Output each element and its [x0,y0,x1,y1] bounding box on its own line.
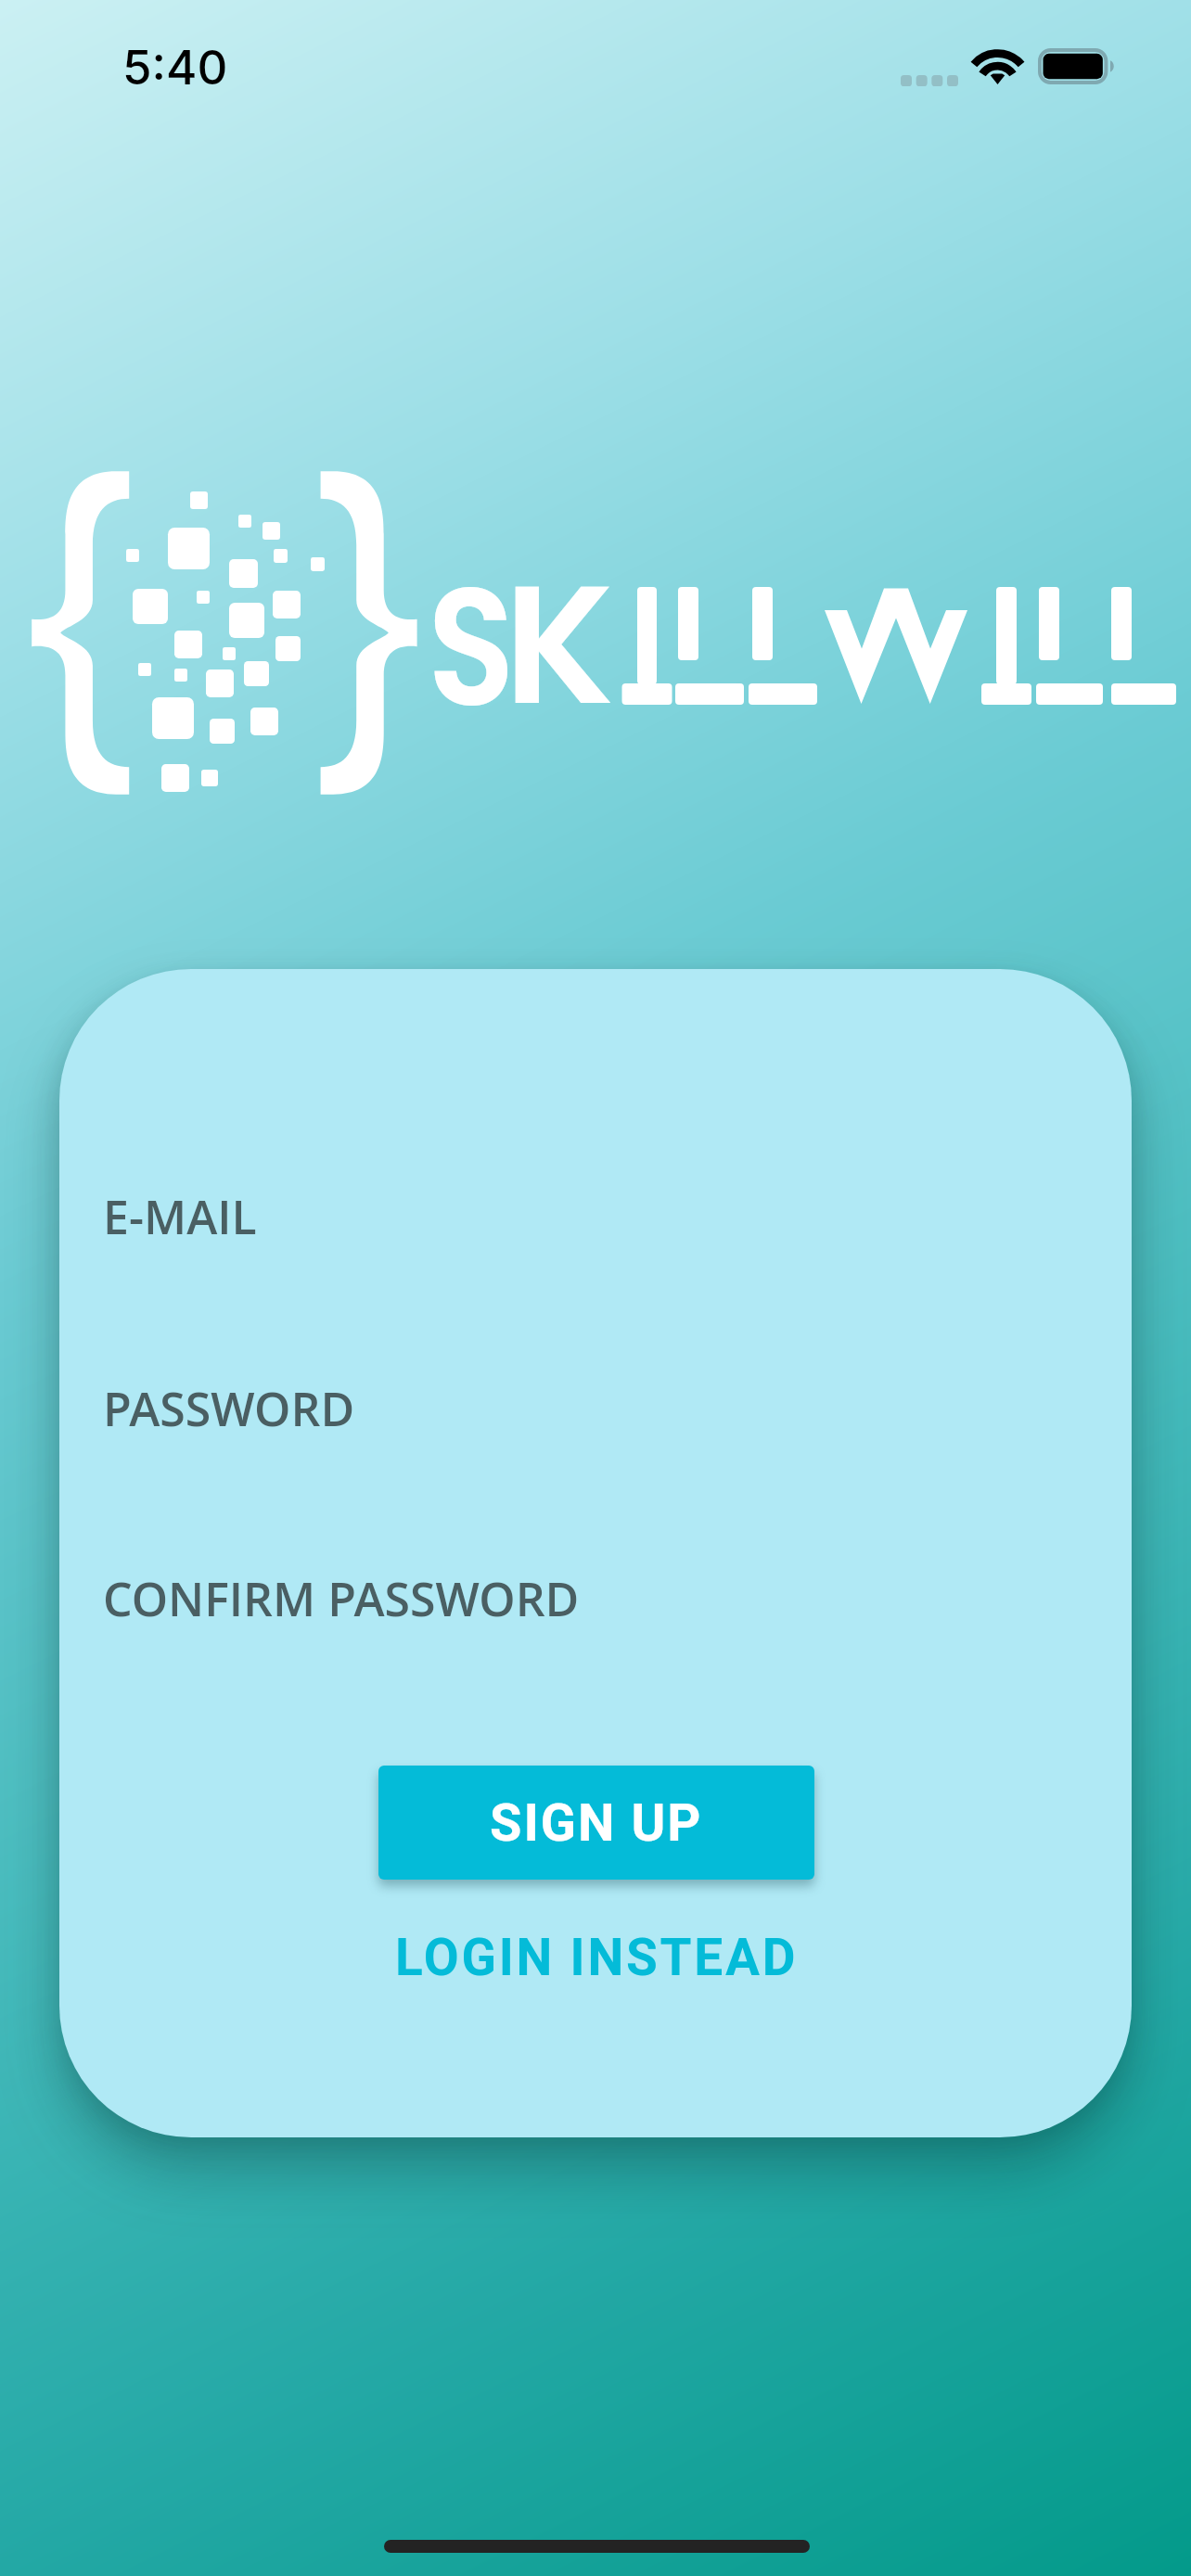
staticText: SIGN UP [490,1792,703,1854]
other: Wi-Fi [973,48,1022,85]
staticText: PASSWORD [103,1377,355,1440]
staticText: E-MAIL [103,1185,257,1248]
staticText: 5:40 [122,39,228,96]
other: SKILLWILL [0,0,1191,2576]
button[interactable]: SIGN UP [378,1766,814,1880]
staticText: LOGIN INSTEAD [395,1928,799,1987]
staticText: CONFIRM PASSWORD [103,1567,580,1630]
other: Battery [1038,48,1115,84]
other: Skillwill logo [28,464,427,809]
button[interactable]: LOGIN INSTEAD [338,1916,855,1999]
